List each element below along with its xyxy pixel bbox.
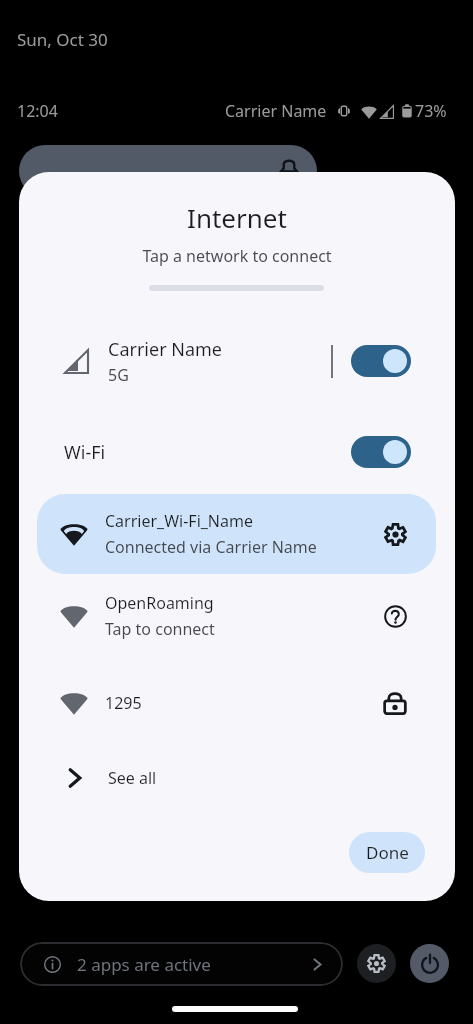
staticText: Carrier Name	[108, 337, 223, 362]
staticText: Tap a network to connect	[19, 245, 455, 267]
staticText: 12:04	[17, 100, 58, 122]
button[interactable]: Carrier Name	[19, 326, 455, 396]
staticText: Wi-Fi	[64, 440, 106, 465]
button[interactable]: Network details	[373, 512, 417, 556]
staticText: Sun, Oct 30	[17, 28, 108, 51]
staticText: Carrier_Wi-Fi_Name	[105, 510, 253, 532]
button[interactable]: Wi-Fi	[19, 417, 455, 487]
button[interactable]: Done	[349, 832, 425, 873]
button[interactable]: Settings	[357, 944, 396, 983]
staticText: Tap to connect	[105, 618, 215, 640]
staticText: 73%	[415, 100, 447, 122]
staticText: Connected via Carrier Name	[105, 536, 317, 558]
staticText: Internet	[19, 200, 455, 235]
staticText: 5G	[108, 364, 129, 386]
staticText: OpenRoaming	[105, 592, 214, 614]
staticText: 1295	[105, 692, 142, 714]
staticText: See all	[108, 767, 157, 789]
button[interactable]: 2 apps are active	[20, 942, 343, 986]
staticText: Carrier Name	[225, 100, 327, 122]
button[interactable]: Toggle	[351, 345, 411, 377]
button[interactable]: Power	[410, 944, 449, 983]
button[interactable]: See all	[19, 744, 455, 812]
button[interactable]: Secured network	[373, 681, 417, 725]
button[interactable]: Network help	[373, 594, 417, 638]
staticText: 2 apps are active	[77, 953, 211, 976]
button[interactable]: OpenRoaming	[19, 574, 455, 658]
staticText: Done	[366, 841, 409, 864]
button[interactable]: Toggle	[351, 436, 411, 468]
button[interactable]: 1295	[19, 661, 455, 745]
button[interactable]: Carrier_Wi-Fi_Name	[37, 494, 436, 574]
